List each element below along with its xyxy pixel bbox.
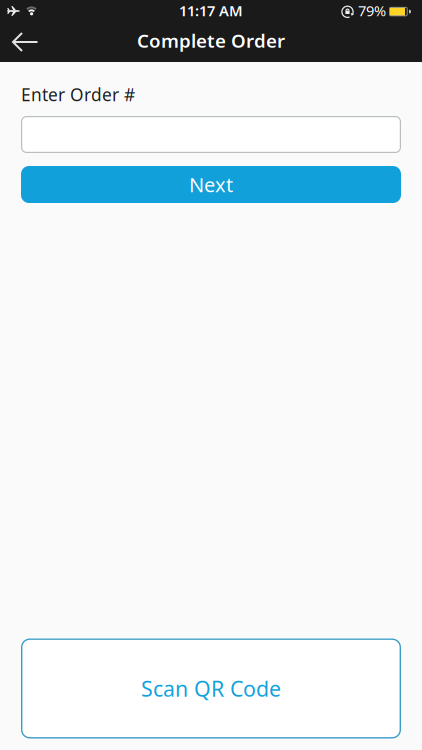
staticText: Next [189, 171, 233, 198]
button[interactable]: Back [0, 22, 39, 62]
staticText: Scan QR Code [141, 674, 281, 703]
staticText: 79% [358, 1, 386, 20]
button[interactable]: Order number field [21, 116, 401, 153]
staticText: Enter Order # [21, 83, 135, 106]
staticText: 11:17 AM [179, 1, 243, 20]
staticText: Complete Order [137, 28, 285, 53]
button[interactable]: Next [21, 166, 401, 203]
button[interactable]: Scan QR Code [21, 638, 401, 738]
